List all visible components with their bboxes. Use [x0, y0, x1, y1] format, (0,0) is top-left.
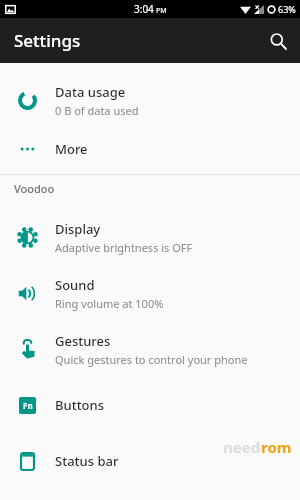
button[interactable]: Fn — [0, 377, 300, 433]
staticText: Voodoo — [14, 181, 55, 196]
staticText: Adaptive brightness is OFF — [55, 240, 193, 255]
staticText: Status bar — [55, 452, 119, 470]
staticText: need — [223, 437, 261, 457]
staticText: 3:04 — [134, 2, 154, 16]
button[interactable]: Search — [256, 19, 300, 63]
staticText: More — [55, 140, 88, 158]
staticText: Fn — [23, 400, 33, 411]
staticText: Quick gestures to control your phone — [55, 352, 248, 367]
staticText: Data usage — [55, 83, 126, 101]
staticText: rom — [261, 437, 292, 457]
button[interactable]: Display — [0, 209, 300, 265]
staticText: Settings — [14, 29, 81, 52]
staticText: Gestures — [55, 332, 111, 350]
staticText: 0 B of data used — [55, 103, 139, 118]
button[interactable]: Status bar — [0, 433, 300, 489]
button[interactable]: Sound — [0, 265, 300, 321]
button[interactable]: Gestures — [0, 321, 300, 377]
button[interactable]: More — [0, 128, 300, 170]
staticText: PM — [156, 6, 167, 16]
staticText: Ring volume at 100% — [55, 296, 164, 311]
button[interactable]: Data usage — [0, 72, 300, 128]
staticText: Display — [55, 220, 101, 238]
staticText: Sound — [55, 276, 95, 294]
staticText: 63% — [278, 3, 296, 15]
staticText: Buttons — [55, 396, 105, 414]
